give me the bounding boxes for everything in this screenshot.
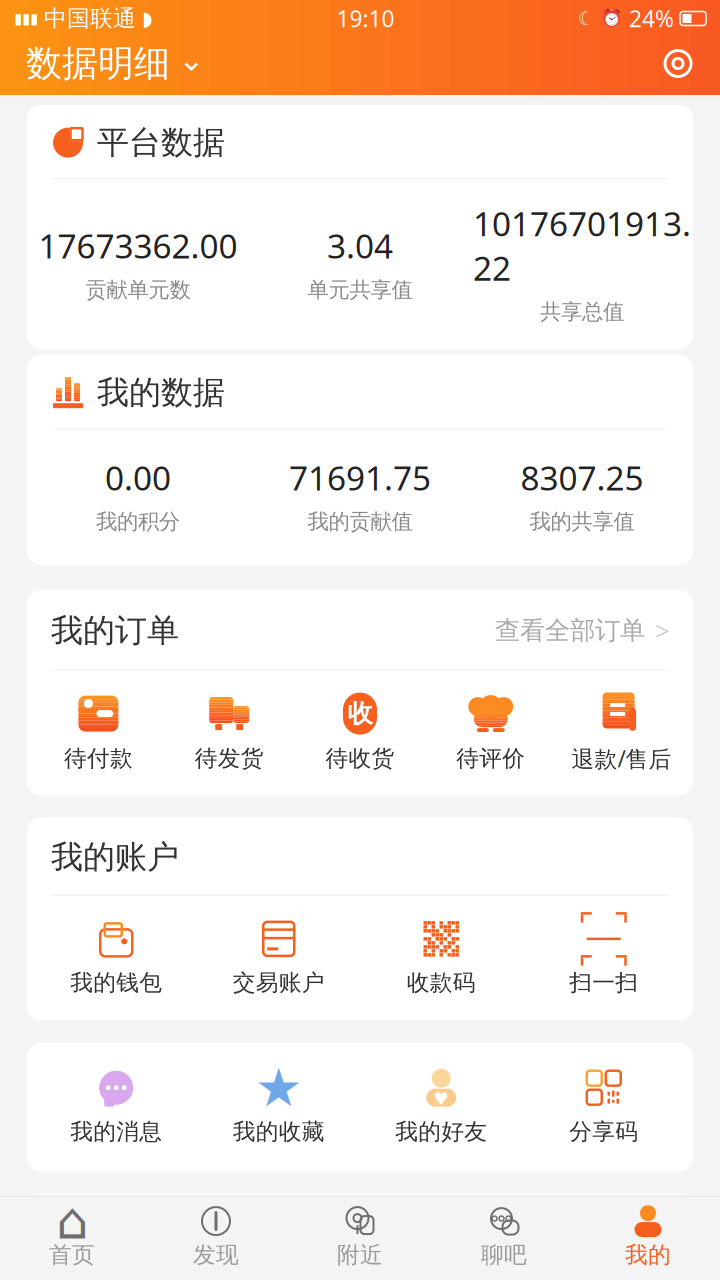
staticText: 10176701913.22: [473, 201, 691, 290]
button[interactable]: 待付款: [33, 688, 164, 776]
staticText: 首页: [49, 1241, 95, 1269]
staticText: 收款码: [407, 969, 476, 997]
staticText: 数据明细: [26, 41, 170, 86]
button[interactable]: 设置: [658, 43, 698, 83]
staticText: 我的积分: [96, 509, 180, 535]
staticText: 收: [347, 698, 372, 729]
button[interactable]: 待发货: [164, 688, 295, 776]
staticText: 我的钱包: [70, 969, 162, 997]
staticText: 71691.75: [289, 455, 431, 500]
staticText: 8307.25: [520, 455, 643, 500]
button[interactable]: ★: [197, 1063, 360, 1149]
button[interactable]: ⌂: [0, 1197, 144, 1279]
staticText: 待付款: [64, 745, 133, 772]
staticText: 分享码: [569, 1118, 638, 1145]
staticText: 我的消息: [70, 1118, 162, 1145]
staticText: 我的贡献值: [307, 509, 412, 535]
button[interactable]: 我的钱包: [35, 914, 197, 1001]
button[interactable]: 附近: [288, 1197, 432, 1279]
staticText: 待发货: [195, 745, 264, 772]
staticText: 3.04: [327, 223, 393, 268]
staticText: 聊吧: [481, 1241, 527, 1269]
staticText: 我的数据: [97, 373, 225, 412]
button[interactable]: 分享码: [522, 1063, 685, 1149]
button[interactable]: 发现: [144, 1197, 288, 1279]
staticText: 附近: [337, 1241, 383, 1269]
staticText: 我的收藏: [233, 1118, 325, 1145]
staticText: 平台数据: [97, 123, 225, 162]
staticText: ⌂: [56, 1192, 88, 1250]
button[interactable]: 退款/售后: [556, 686, 687, 778]
staticText: ▮▮▮: [14, 10, 38, 27]
button[interactable]: 交易账户: [197, 914, 360, 1001]
staticText: 我的账户: [51, 838, 179, 877]
staticText: ☾: [578, 8, 595, 29]
staticText: 24%: [629, 3, 674, 33]
button[interactable]: 收: [295, 688, 425, 776]
staticText: ◗: [142, 7, 153, 30]
staticText: 我的: [625, 1241, 671, 1269]
staticText: ★: [255, 1057, 303, 1118]
staticText: 我的共享值: [529, 509, 634, 535]
staticText: 我的订单: [51, 611, 179, 650]
staticText: 19:10: [336, 3, 394, 33]
staticText: 地址管理: [101, 1212, 229, 1251]
button[interactable]: 数据明细: [22, 35, 209, 92]
staticText: 我的好友: [395, 1118, 487, 1145]
staticText: 扫一扫: [569, 969, 638, 997]
staticText: 0.00: [105, 455, 171, 500]
button[interactable]: 我的: [576, 1197, 720, 1279]
button[interactable]: 扫一扫: [522, 914, 685, 1001]
staticText: 发现: [193, 1241, 239, 1269]
staticText: ⏰: [601, 9, 623, 28]
button[interactable]: 我的消息: [35, 1063, 197, 1149]
staticText: ♥: [433, 1089, 449, 1109]
staticText: 贡献单元数: [85, 277, 190, 303]
staticText: ⌄: [178, 41, 205, 78]
staticText: 待评价: [456, 745, 525, 772]
staticText: 单元共享值: [307, 277, 412, 303]
button[interactable]: 收款码: [360, 914, 522, 1001]
button[interactable]: 查看全部订单: [495, 610, 669, 651]
staticText: 交易账户: [233, 969, 325, 997]
staticText: 查看全部订单: [495, 615, 645, 646]
button[interactable]: 聊吧: [432, 1197, 576, 1279]
staticText: 退款/售后: [572, 743, 672, 774]
button[interactable]: 地址管理: [27, 1193, 693, 1269]
staticText: 待收货: [325, 745, 394, 772]
staticText: 中国联通: [44, 5, 136, 32]
staticText: >: [655, 614, 669, 647]
staticText: >: [653, 1213, 669, 1250]
button[interactable]: 待评价: [425, 688, 556, 776]
staticText: 17673362.00: [38, 223, 237, 268]
button[interactable]: ♥: [360, 1063, 522, 1149]
staticText: 共享总值: [540, 299, 624, 325]
